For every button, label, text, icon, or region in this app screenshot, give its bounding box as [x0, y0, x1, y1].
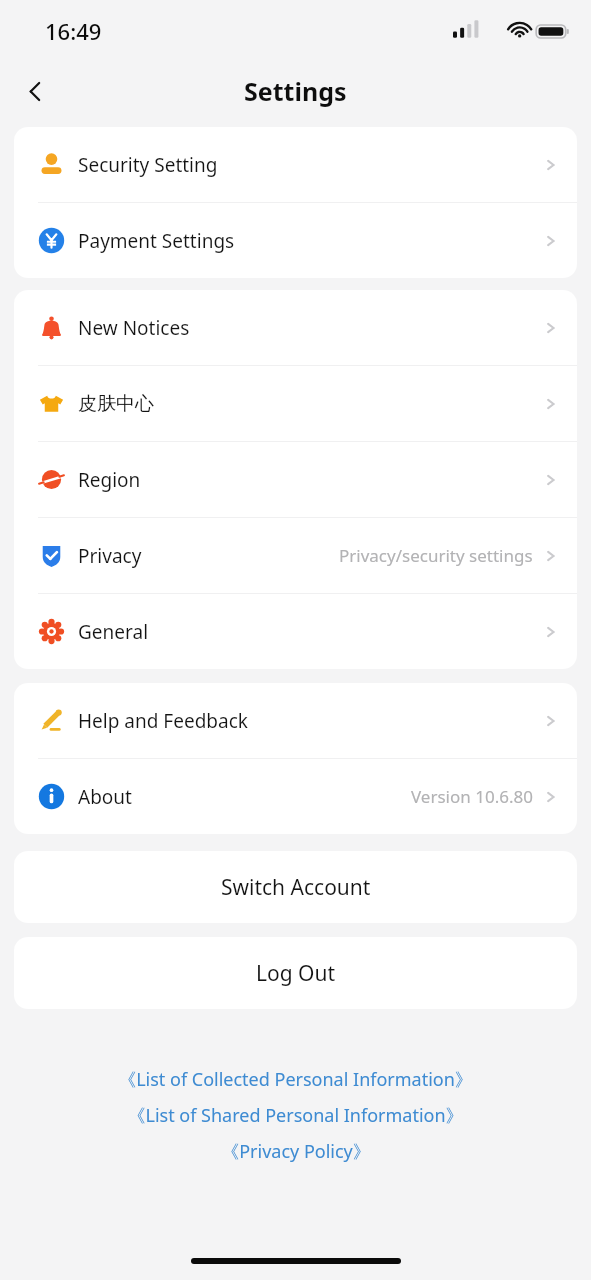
staticText: 《List of Shared Personal Information》: [127, 1103, 464, 1128]
staticText: Settings: [244, 74, 347, 108]
button[interactable]: 《List of Shared Personal Information》: [0, 1100, 591, 1131]
button[interactable]: General: [14, 594, 577, 669]
staticText: General: [78, 619, 149, 645]
staticText: Log Out: [256, 959, 336, 988]
staticText: Help and Feedback: [78, 708, 248, 734]
button[interactable]: About: [14, 759, 577, 834]
staticText: Region: [78, 467, 141, 493]
staticText: Privacy: [78, 543, 142, 569]
button[interactable]: 《Privacy Policy》: [0, 1136, 591, 1167]
button[interactable]: 皮肤中心: [14, 366, 577, 441]
button[interactable]: Switch Account: [14, 851, 577, 923]
staticText: 《List of Collected Personal Information》: [118, 1067, 473, 1092]
button[interactable]: Payment Settings: [14, 203, 577, 278]
button[interactable]: 《List of Collected Personal Information》: [0, 1064, 591, 1095]
staticText: Security Setting: [78, 152, 218, 178]
staticText: New Notices: [78, 315, 190, 341]
staticText: Privacy/security settings: [339, 544, 533, 567]
button[interactable]: Privacy: [14, 518, 577, 593]
button[interactable]: Security Setting: [14, 127, 577, 202]
staticText: 16:49: [45, 16, 102, 46]
staticText: 《Privacy Policy》: [221, 1139, 371, 1164]
button[interactable]: New Notices: [14, 290, 577, 365]
staticText: Payment Settings: [78, 228, 235, 254]
staticText: 皮肤中心: [78, 392, 154, 416]
button[interactable]: Back: [12, 68, 58, 114]
button[interactable]: Region: [14, 442, 577, 517]
staticText: Version 10.6.80: [411, 785, 533, 808]
staticText: Switch Account: [221, 873, 371, 902]
staticText: About: [78, 784, 132, 810]
button[interactable]: Log Out: [14, 937, 577, 1009]
button[interactable]: Help and Feedback: [14, 683, 577, 758]
